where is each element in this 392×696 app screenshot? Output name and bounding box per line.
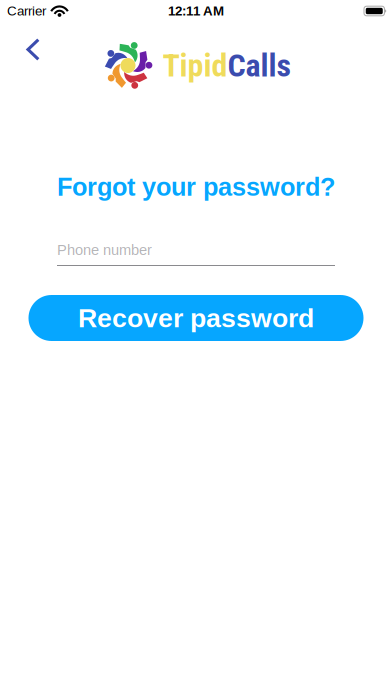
staticText: Carrier (7, 4, 46, 18)
button[interactable]: Back (0, 38, 56, 83)
staticText: Tipid (162, 47, 227, 84)
staticText: 12:11 AM (168, 4, 224, 18)
staticText: Phone number (57, 242, 152, 258)
staticText: Recover password (78, 303, 314, 333)
staticText: Forgot your password? (57, 173, 335, 201)
button[interactable]: Recover password (28, 295, 363, 341)
staticText: Calls (227, 47, 291, 84)
